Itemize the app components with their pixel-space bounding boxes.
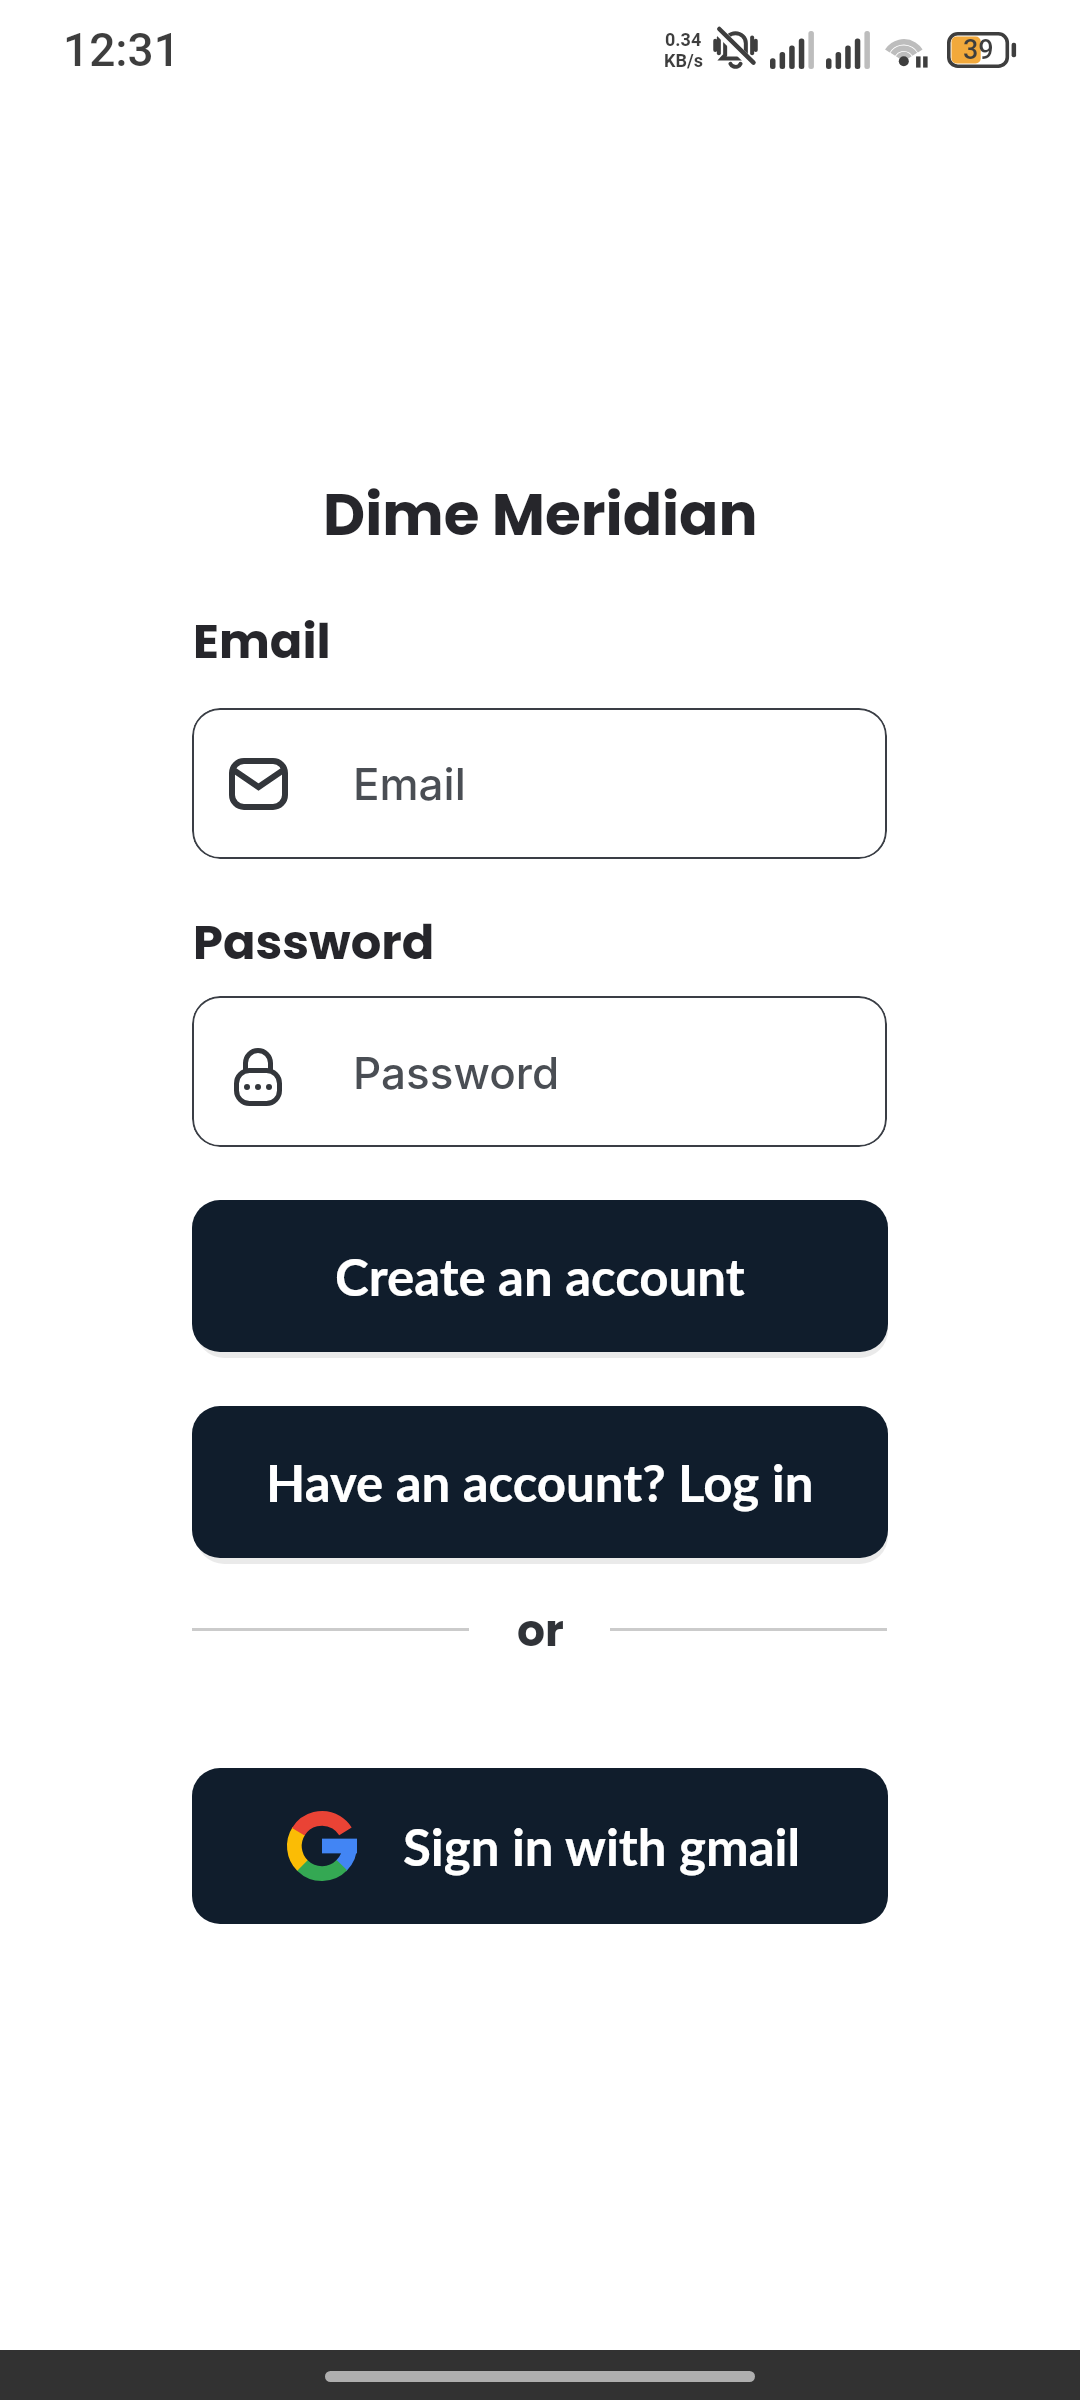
- button[interactable]: Email: [192, 708, 887, 859]
- staticText: Have an account? Log in: [266, 1452, 814, 1513]
- staticText: Email: [193, 608, 331, 668]
- staticText: 0.34: [665, 29, 702, 50]
- staticText: Password: [193, 909, 435, 969]
- staticText: KB/s: [664, 50, 703, 71]
- staticText: or: [517, 1600, 564, 1662]
- button[interactable]: Create an account: [192, 1200, 888, 1352]
- staticText: Sign in with gmail: [403, 1816, 801, 1877]
- button[interactable]: Have an account? Log in: [192, 1406, 888, 1558]
- staticText: Password: [353, 1046, 560, 1099]
- button[interactable]: Password: [192, 996, 887, 1147]
- staticText: Dime Meridian: [323, 474, 758, 555]
- staticText: 12:31: [63, 23, 180, 77]
- staticText: Create an account: [335, 1246, 745, 1307]
- button[interactable]: Sign in with gmail: [192, 1768, 888, 1924]
- staticText: Email: [353, 757, 466, 810]
- staticText: 39: [963, 34, 994, 66]
